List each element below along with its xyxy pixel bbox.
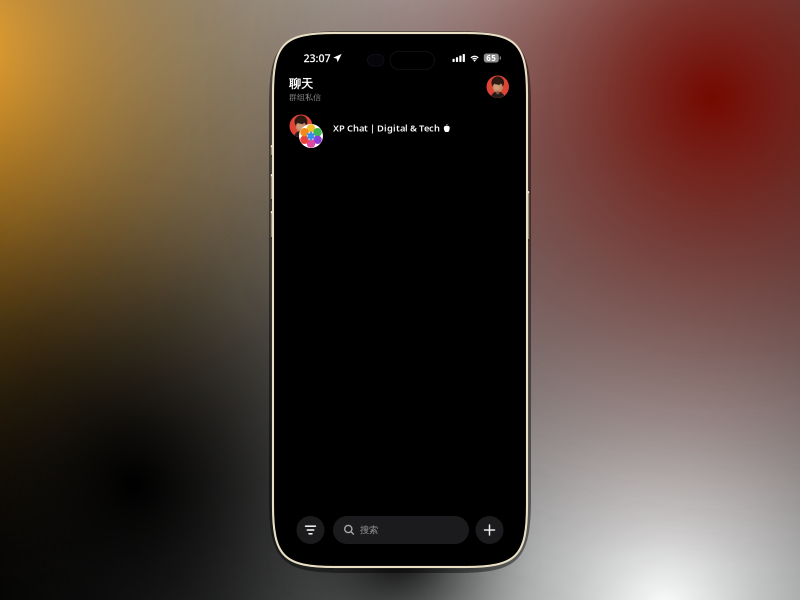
staticText: 23:07 — [303, 51, 330, 65]
staticText: 65 — [486, 53, 496, 63]
staticText: 群组私信 — [289, 92, 321, 102]
staticText: 聊天 — [289, 76, 313, 91]
button[interactable]: Profile — [486, 75, 509, 98]
button[interactable]: New chat — [475, 516, 503, 544]
staticText: XP Chat | Digital & Tech — [333, 122, 440, 134]
button[interactable]: Filter — [296, 516, 324, 544]
button[interactable]: 搜索 — [333, 516, 469, 544]
staticText: 搜索 — [360, 524, 378, 536]
button[interactable]: XP Chat | Digital & Tech — [286, 113, 510, 147]
